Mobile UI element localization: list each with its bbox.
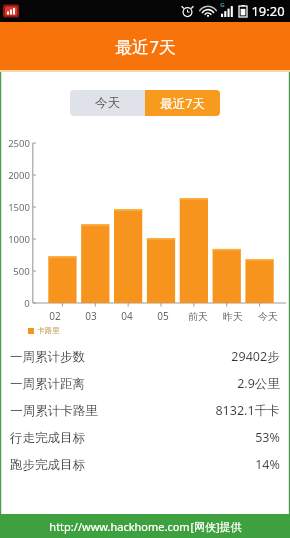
staticText: 19:20 — [251, 2, 285, 20]
staticText: 03 — [85, 309, 97, 323]
staticText: 2000 — [8, 169, 30, 181]
staticText: 02 — [49, 309, 61, 323]
staticText: 一周累计距离 — [10, 376, 85, 392]
staticText: 53% — [255, 429, 280, 446]
staticText: 1000 — [8, 233, 30, 245]
staticText: 2.9公里 — [237, 375, 280, 392]
button[interactable]: 一周累计卡路里 — [0, 397, 290, 424]
button[interactable]: 跑步完成目标 — [0, 451, 290, 478]
staticText: 8132.1千卡 — [215, 402, 280, 419]
button[interactable]: 今天 — [70, 90, 145, 116]
staticText: 行走完成目标 — [10, 430, 85, 446]
staticText: 今天 — [258, 310, 278, 323]
staticText: 最近7天 — [115, 35, 176, 58]
staticText: http://www.hackhome.com — [49, 519, 190, 534]
staticText: 04 — [121, 309, 133, 323]
button[interactable]: 最近7天 — [145, 90, 220, 116]
staticText: 今天 — [95, 95, 120, 111]
staticText: 500 — [13, 265, 30, 277]
staticText: 0 — [24, 297, 30, 309]
staticText: 2500 — [8, 137, 30, 149]
button[interactable]: 行走完成目标 — [0, 424, 290, 451]
button[interactable]: 一周累计距离 — [0, 370, 290, 397]
staticText: 最近7天 — [160, 95, 205, 112]
staticText: 昨天 — [223, 310, 243, 323]
button[interactable]: 一周累计步数 — [0, 343, 290, 370]
staticText: G — [220, 1, 225, 9]
staticText: 一周累计卡路里 — [10, 403, 98, 419]
staticText: 14% — [255, 456, 280, 473]
staticText: 一周累计步数 — [10, 349, 85, 365]
staticText: 卡路里 — [37, 326, 60, 335]
staticText: 跑步完成目标 — [10, 457, 85, 473]
staticText: 05 — [157, 309, 169, 323]
staticText: 1500 — [8, 201, 30, 213]
staticText: [网侠]提供 — [190, 519, 242, 534]
staticText: 29402步 — [231, 348, 280, 365]
staticText: 前天 — [188, 310, 208, 323]
